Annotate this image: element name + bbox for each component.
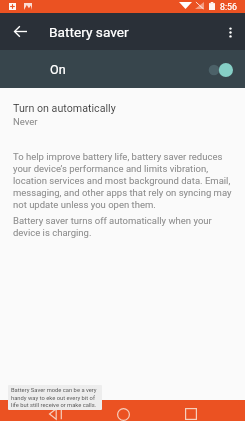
staticText: Battery saver turns off automatically wh…: [13, 215, 232, 238]
staticText: 8:56: [220, 2, 237, 12]
staticText: On: [50, 62, 66, 77]
button[interactable]: Home: [102, 408, 142, 421]
button[interactable]: More options: [215, 13, 245, 50]
button[interactable]: Turn on automatically: [0, 102, 245, 133]
staticText: Battery saver: [49, 24, 129, 40]
button[interactable]: Recents: [171, 408, 211, 421]
staticText: Turn on automatically: [13, 102, 116, 115]
button[interactable]: On: [0, 50, 245, 88]
staticText: To help improve battery life, battery sa…: [13, 151, 232, 210]
staticText: Never: [13, 116, 38, 127]
button[interactable]: Back: [34, 408, 74, 421]
button[interactable]: Battery Saver mode can be a very handy w…: [8, 385, 102, 410]
staticText: Battery Saver mode can be a very handy w…: [11, 387, 99, 408]
button[interactable]: Back: [0, 13, 40, 50]
